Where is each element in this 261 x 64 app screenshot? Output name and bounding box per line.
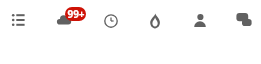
- button[interactable]: Chat: [224, 2, 261, 42]
- button[interactable]: Lists: [0, 2, 39, 42]
- button[interactable]: Inbox: [44, 2, 84, 42]
- button[interactable]: Recent: [91, 2, 131, 42]
- staticText: 99+: [67, 7, 85, 21]
- button[interactable]: Trending: [135, 2, 175, 42]
- button[interactable]: Account: [180, 2, 220, 42]
